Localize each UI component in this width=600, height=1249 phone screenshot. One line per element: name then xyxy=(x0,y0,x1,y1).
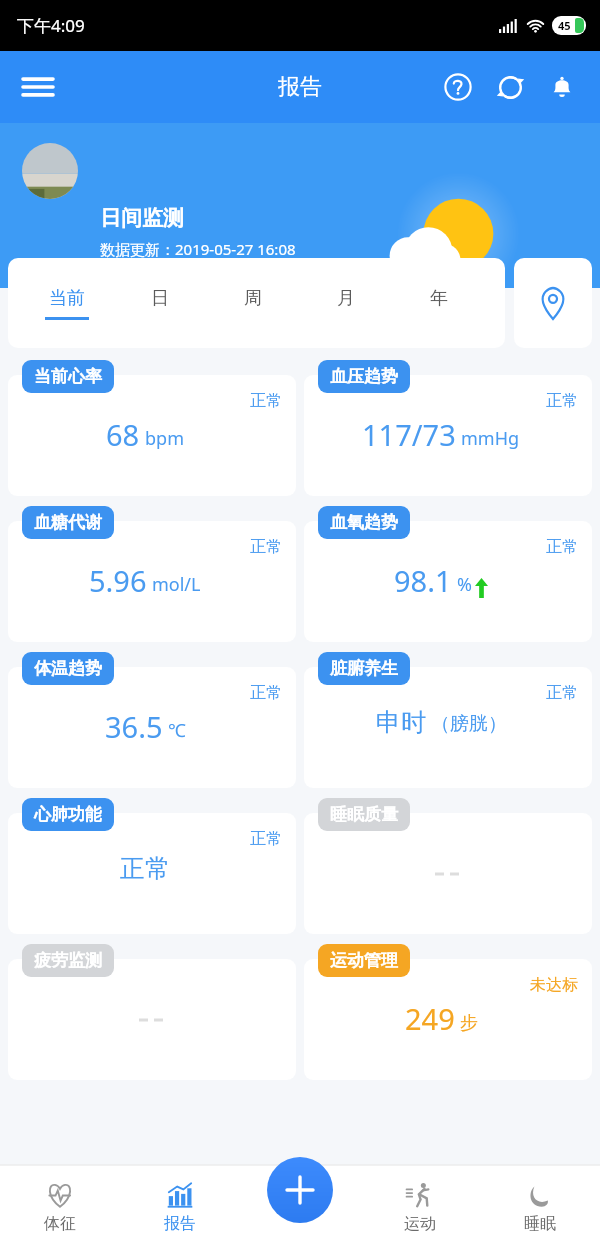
button[interactable]: 当前 xyxy=(20,258,113,348)
staticText: 98.1 xyxy=(394,561,452,600)
button[interactable]: 正常 xyxy=(304,360,592,496)
staticText: 45 xyxy=(558,18,571,33)
button[interactable]: 疲劳监测 xyxy=(8,944,296,1080)
button[interactable]: Help xyxy=(436,65,480,109)
staticText: mmHg xyxy=(461,426,520,451)
button[interactable]: Refresh xyxy=(488,65,532,109)
button[interactable]: Profile xyxy=(22,143,78,199)
staticText: 运动 xyxy=(404,1214,436,1234)
staticText: mol/L xyxy=(152,572,201,597)
staticText: 年 xyxy=(430,287,448,310)
button[interactable]: 年 xyxy=(392,258,485,348)
staticText: 睡眠 xyxy=(524,1214,556,1234)
staticText: 心肺功能 xyxy=(34,804,102,825)
button[interactable]: 体征 xyxy=(0,1165,120,1249)
staticText: 报告 xyxy=(278,73,322,101)
staticText: 月 xyxy=(337,287,355,310)
staticText: 5.96 xyxy=(89,561,147,600)
button[interactable]: 报告 xyxy=(120,1165,240,1249)
staticText: 正常 xyxy=(250,683,282,703)
staticText: bpm xyxy=(145,426,184,451)
staticText: 数据更新：2019-05-27 16:08 xyxy=(100,239,296,259)
button[interactable]: Menu xyxy=(14,63,62,111)
staticText: 正常 xyxy=(250,537,282,557)
staticText: 正常 xyxy=(120,853,170,884)
staticText: 运动管理 xyxy=(330,950,398,971)
button[interactable]: 睡眠质量 xyxy=(304,798,592,934)
staticText: 体温趋势 xyxy=(34,658,102,679)
button[interactable]: 运动 xyxy=(360,1165,480,1249)
staticText: 体征 xyxy=(44,1214,76,1234)
button[interactable]: 未达标 xyxy=(304,944,592,1080)
staticText: （膀胱） xyxy=(431,712,507,736)
staticText: 当前心率 xyxy=(34,366,102,387)
staticText: 未达标 xyxy=(530,975,578,995)
button[interactable]: 正常 xyxy=(8,798,296,934)
staticText: 脏腑养生 xyxy=(330,658,398,679)
button[interactable]: 月 xyxy=(299,258,392,348)
button[interactable]: 正常 xyxy=(8,652,296,788)
staticText: 正常 xyxy=(546,537,578,557)
staticText: ℃ xyxy=(168,718,186,743)
staticText: 血氧趋势 xyxy=(330,512,398,533)
staticText: 血糖代谢 xyxy=(34,512,102,533)
staticText: 申时 xyxy=(376,707,426,738)
staticText: 疲劳监测 xyxy=(34,950,102,971)
button[interactable]: 正常 xyxy=(8,506,296,642)
staticText: 日 xyxy=(151,287,169,310)
button[interactable]: 日 xyxy=(113,258,206,348)
button[interactable]: 正常 xyxy=(304,506,592,642)
staticText: 68 xyxy=(106,415,140,454)
staticText: 正常 xyxy=(546,683,578,703)
staticText: 睡眠质量 xyxy=(330,804,398,825)
staticText: 周 xyxy=(244,287,262,310)
staticText: 117/73 xyxy=(362,415,456,454)
button[interactable]: Location xyxy=(514,258,592,348)
staticText: 血压趋势 xyxy=(330,366,398,387)
staticText: 日间监测 xyxy=(100,205,184,231)
staticText: 步 xyxy=(460,1012,478,1035)
staticText: 正常 xyxy=(546,391,578,411)
staticText: 249 xyxy=(405,999,455,1038)
staticText: 正常 xyxy=(250,829,282,849)
button[interactable]: 正常 xyxy=(8,360,296,496)
staticText: % xyxy=(457,572,472,597)
staticText: 下午4:09 xyxy=(17,14,85,37)
button[interactable]: Add xyxy=(267,1157,333,1223)
button[interactable]: Notifications xyxy=(540,65,584,109)
staticText: 36.5 xyxy=(105,707,163,746)
button[interactable]: 正常 xyxy=(304,652,592,788)
staticText: 报告 xyxy=(164,1214,196,1234)
staticText: 当前 xyxy=(49,287,85,310)
staticText: 正常 xyxy=(250,391,282,411)
button[interactable]: 睡眠 xyxy=(480,1165,600,1249)
button[interactable]: 周 xyxy=(206,258,299,348)
